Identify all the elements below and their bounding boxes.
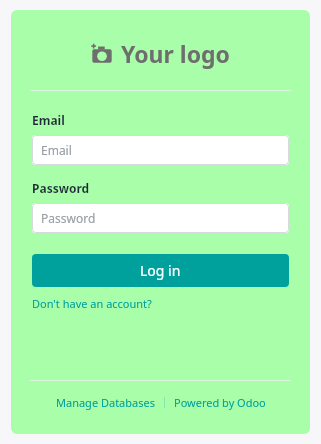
staticText: Email (32, 112, 65, 128)
button[interactable]: Log in (32, 254, 289, 287)
button[interactable]: Manage Databases (56, 395, 155, 410)
button[interactable]: Password (32, 203, 289, 233)
staticText: Your logo (121, 38, 230, 69)
button[interactable]: Don't have an account? (32, 296, 152, 311)
staticText: Password (32, 180, 90, 196)
button[interactable]: Email (32, 135, 289, 165)
button[interactable]: Powered by Odoo (174, 395, 266, 410)
staticText: Email (41, 142, 72, 158)
staticText: Powered by Odoo (174, 395, 266, 410)
staticText: Don't have an account? (32, 296, 152, 311)
staticText: Log in (140, 261, 181, 280)
staticText: Password (41, 210, 96, 226)
staticText: Manage Databases (56, 395, 155, 410)
